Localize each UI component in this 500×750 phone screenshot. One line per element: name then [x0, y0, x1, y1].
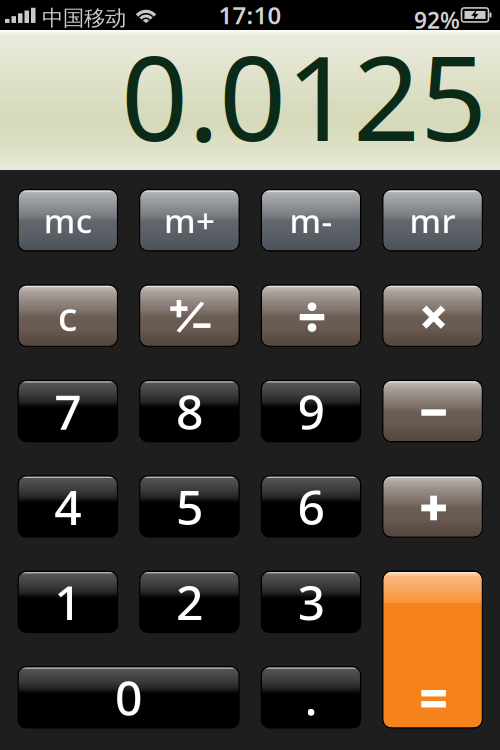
staticText: 0 — [115, 665, 142, 729]
staticText: 17:10 — [218, 0, 281, 31]
button[interactable]: memory add — [139, 189, 240, 251]
button[interactable]: decimal point — [261, 666, 361, 728]
staticText: 7 — [54, 379, 81, 443]
button[interactable]: minus — [382, 380, 483, 442]
button[interactable]: memory subtract — [261, 189, 361, 251]
staticText: c — [58, 289, 78, 342]
staticText: 3 — [297, 570, 324, 634]
button[interactable]: plus minus — [139, 284, 240, 347]
staticText: 4 — [54, 475, 81, 538]
staticText: 92% — [414, 5, 460, 35]
button[interactable]: 7 — [17, 380, 118, 442]
button[interactable]: 5 — [139, 475, 240, 538]
button[interactable]: memory clear — [17, 189, 118, 251]
button[interactable]: memory recall — [382, 189, 483, 251]
staticText: 2 — [176, 570, 203, 634]
staticText: 1 — [54, 570, 81, 634]
staticText: 6 — [297, 475, 324, 538]
button[interactable]: plus — [382, 475, 483, 538]
staticText: 中国移动 — [42, 5, 126, 31]
staticText: . — [304, 665, 317, 729]
staticText: 5 — [176, 475, 203, 538]
button[interactable]: 8 — [139, 380, 240, 442]
button[interactable]: 0 — [17, 666, 240, 728]
button[interactable]: equals — [382, 571, 483, 728]
staticText: 9 — [297, 379, 324, 443]
button[interactable]: 1 — [17, 571, 118, 633]
button[interactable]: 2 — [139, 571, 240, 633]
staticText: 0.0125 — [121, 18, 487, 173]
button[interactable]: multiply — [382, 284, 483, 347]
button[interactable]: 9 — [261, 380, 361, 442]
staticText: mr — [410, 198, 456, 242]
button[interactable]: 6 — [261, 475, 361, 538]
staticText: mc — [44, 198, 92, 242]
button[interactable]: clear — [17, 284, 118, 347]
button[interactable]: 3 — [261, 571, 361, 633]
staticText: 8 — [176, 379, 203, 443]
staticText: m+ — [164, 198, 215, 242]
button[interactable]: divide — [261, 284, 361, 347]
button[interactable]: 4 — [17, 475, 118, 538]
staticText: m- — [289, 198, 332, 242]
